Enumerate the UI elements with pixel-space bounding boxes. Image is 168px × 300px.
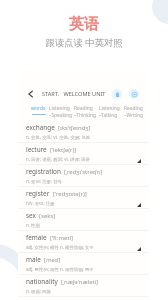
staticText: [ˈlektʃə(r)] bbox=[50, 146, 77, 154]
staticText: [meɪl] bbox=[44, 256, 61, 264]
button[interactable]: words bbox=[31, 105, 46, 115]
staticText: n. 国籍; 民族 bbox=[26, 288, 51, 294]
staticText: 跟读点读 中英对照 bbox=[0, 36, 168, 49]
staticText: Listening bbox=[49, 105, 70, 112]
staticText: [ɪksˈtʃeɪndʒ] bbox=[58, 124, 91, 132]
staticText: [ˈfiːmeɪl] bbox=[50, 234, 73, 242]
button[interactable]: lecture bbox=[18, 143, 149, 165]
staticText: [ˈredʒɪstə(r)] bbox=[53, 190, 87, 198]
button[interactable]: Settings bbox=[129, 89, 139, 99]
staticText: adj. 女性的; 雌性 n. 雌性动物; 女子 bbox=[26, 244, 94, 250]
staticText: –Speaking bbox=[49, 112, 73, 119]
staticText: registration bbox=[26, 167, 61, 176]
staticText: register bbox=[26, 189, 50, 198]
staticText: nationality bbox=[26, 277, 58, 286]
button[interactable]: nationality bbox=[18, 275, 149, 297]
button[interactable]: registration bbox=[18, 165, 149, 187]
staticText: n. 交换, 交流; vt. 交换, 交易; 兑换 bbox=[26, 134, 91, 140]
staticText: n/v. 登记; 注册 bbox=[26, 200, 55, 206]
staticText: Listening bbox=[99, 105, 120, 112]
staticText: sex bbox=[26, 211, 36, 220]
staticText: START. WELCOME UNIT bbox=[42, 90, 106, 98]
button[interactable]: Bookmark bbox=[112, 89, 122, 99]
button[interactable]: Back bbox=[25, 88, 37, 100]
staticText: [ˌnæʃəˈnæləti] bbox=[61, 278, 99, 286]
button[interactable]: male bbox=[18, 253, 149, 275]
staticText: Reading bbox=[124, 105, 143, 112]
staticText: 英语 bbox=[0, 15, 168, 34]
staticText: male bbox=[26, 255, 41, 264]
staticText: words bbox=[31, 105, 46, 112]
staticText: n. 演讲; 讲座; 教训; vi. 讲课; 演讲 bbox=[26, 156, 90, 162]
button[interactable]: exchange bbox=[18, 121, 149, 143]
staticText: [seks] bbox=[39, 212, 56, 220]
staticText: –Writing bbox=[124, 112, 144, 119]
staticText: Reading bbox=[74, 105, 93, 112]
button[interactable]: female bbox=[18, 231, 149, 253]
staticText: female bbox=[26, 233, 47, 242]
button[interactable]: register bbox=[18, 187, 149, 209]
staticText: adj. 男性的; 雄性 n. 雄性动物; 男子 bbox=[26, 266, 94, 272]
staticText: –Thinking bbox=[74, 112, 96, 119]
staticText: –Talking bbox=[99, 112, 118, 119]
staticText: exchange bbox=[26, 123, 55, 132]
staticText: n. 登记; 注册; 挂号 bbox=[26, 178, 63, 184]
staticText: lecture bbox=[26, 145, 47, 154]
button[interactable]: sex bbox=[18, 209, 149, 231]
staticText: [ˌredʒɪˈstreɪʃn] bbox=[64, 168, 103, 176]
staticText: n. 性别 bbox=[26, 222, 40, 228]
